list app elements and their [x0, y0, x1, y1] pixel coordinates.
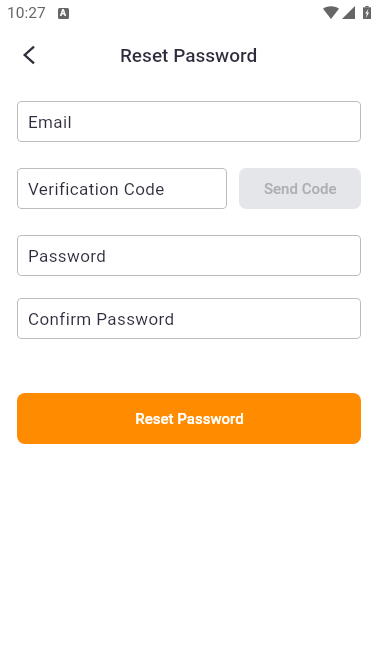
button[interactable]: Confirm Password: [17, 298, 361, 339]
button[interactable]: Verification Code: [17, 168, 227, 209]
staticText: Reset Password: [135, 410, 244, 428]
staticText: A: [60, 8, 67, 19]
button[interactable]: Back: [12, 38, 46, 72]
button[interactable]: Reset Password: [17, 393, 361, 444]
staticText: Send Code: [264, 180, 337, 198]
staticText: Confirm Password: [28, 309, 175, 329]
staticText: Verification Code: [28, 179, 165, 199]
staticText: Email: [28, 112, 73, 132]
button[interactable]: Email: [17, 101, 361, 142]
staticText: Reset Password: [120, 44, 258, 66]
staticText: 10:27: [7, 4, 46, 22]
staticText: Password: [28, 246, 107, 266]
button[interactable]: Password: [17, 235, 361, 276]
button[interactable]: Send Code: [239, 168, 361, 209]
